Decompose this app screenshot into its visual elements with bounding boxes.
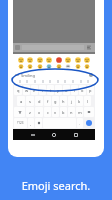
button[interactable]: o xyxy=(79,85,86,95)
button[interactable]: h xyxy=(60,96,67,106)
staticText: a xyxy=(20,99,23,104)
staticText: , xyxy=(30,121,32,126)
staticText: k xyxy=(78,99,81,104)
staticText: q xyxy=(17,88,20,93)
staticText: r xyxy=(42,88,44,93)
staticText: z xyxy=(29,110,31,115)
staticText: g xyxy=(54,99,57,104)
button[interactable]: Enter xyxy=(84,118,94,128)
button[interactable]: w xyxy=(23,85,30,95)
staticText: s xyxy=(29,99,31,104)
staticText: d xyxy=(38,99,41,104)
staticText: c xyxy=(47,110,49,115)
staticText: e xyxy=(33,88,36,93)
button[interactable]: v xyxy=(52,107,59,117)
button[interactable]: Emoji xyxy=(37,57,43,63)
button[interactable]: z xyxy=(26,107,34,117)
button[interactable]: Emoji xyxy=(37,64,43,69)
button[interactable]: Shift xyxy=(14,107,25,117)
button[interactable]: Back xyxy=(31,133,35,137)
button[interactable]: c xyxy=(44,107,51,117)
button[interactable]: Emoji xyxy=(84,57,90,63)
button[interactable]: r xyxy=(39,85,46,95)
staticText: Emoji search. xyxy=(0,178,112,193)
button[interactable]: . xyxy=(77,118,83,128)
button[interactable]: q xyxy=(14,85,22,95)
button[interactable]: Emoji xyxy=(27,64,33,69)
button[interactable]: Emoji xyxy=(46,64,52,69)
button[interactable]: Recents xyxy=(74,133,78,137)
staticText: b xyxy=(62,110,65,115)
button[interactable]: Emoji xyxy=(75,64,81,69)
button[interactable]: Emoji xyxy=(84,64,90,69)
button[interactable]: x xyxy=(35,107,43,117)
staticText: p xyxy=(89,88,92,93)
staticText: t xyxy=(50,88,52,93)
staticText: y xyxy=(57,88,60,93)
button[interactable]: e xyxy=(31,85,38,95)
button[interactable]: b xyxy=(60,107,67,117)
button[interactable]: p xyxy=(87,85,94,95)
button[interactable]: Add attachment xyxy=(13,43,95,52)
button[interactable]: ?123 xyxy=(14,118,27,128)
button[interactable]: y xyxy=(55,85,62,95)
button[interactable]: g xyxy=(52,96,59,106)
button[interactable]: Back xyxy=(13,71,95,79)
button[interactable]: j xyxy=(68,96,75,106)
button[interactable]: Clear xyxy=(89,73,93,77)
staticText: w xyxy=(25,88,29,93)
button[interactable]: Send xyxy=(86,44,93,51)
button[interactable]: u xyxy=(63,85,70,95)
button[interactable]: i xyxy=(71,85,78,95)
button[interactable]: m xyxy=(76,107,83,117)
button[interactable]: s xyxy=(26,96,34,106)
staticText: l xyxy=(87,99,89,104)
button[interactable]: t xyxy=(47,85,54,95)
button[interactable]: Emoji xyxy=(56,57,62,63)
staticText: Smiling xyxy=(21,73,35,78)
staticText: j xyxy=(71,99,73,104)
staticText: i xyxy=(74,88,76,93)
button[interactable]: k xyxy=(76,96,83,106)
staticText: o xyxy=(81,88,84,93)
button[interactable]: l xyxy=(84,96,91,106)
button[interactable]: d xyxy=(35,96,43,106)
button[interactable]: Emoji xyxy=(35,118,42,128)
button[interactable]: , xyxy=(28,118,34,128)
staticText: x xyxy=(38,110,41,115)
button[interactable]: Emoji xyxy=(18,64,24,69)
staticText: u xyxy=(65,88,68,93)
button[interactable]: Emoji xyxy=(65,57,71,63)
button[interactable]: Emoji xyxy=(18,57,24,63)
staticText: f xyxy=(47,99,49,104)
button[interactable]: a xyxy=(17,96,25,106)
staticText: . xyxy=(79,121,81,126)
button[interactable]: Home xyxy=(52,133,56,137)
staticText: m xyxy=(78,110,82,115)
button[interactable]: Emoji xyxy=(65,64,71,69)
button[interactable]: Backspace xyxy=(84,107,94,117)
button[interactable]: Emoji xyxy=(56,64,62,69)
staticText: h xyxy=(62,99,65,104)
button[interactable]: n xyxy=(68,107,75,117)
staticText: v xyxy=(54,110,57,115)
button[interactable]: Emoji xyxy=(46,57,52,63)
staticText: n xyxy=(70,110,73,115)
staticText: ?123 xyxy=(17,121,24,125)
button[interactable]: Emoji xyxy=(75,57,81,63)
button[interactable]: f xyxy=(44,96,51,106)
other: Back xyxy=(15,73,19,77)
button[interactable]: Emoji xyxy=(27,57,33,63)
